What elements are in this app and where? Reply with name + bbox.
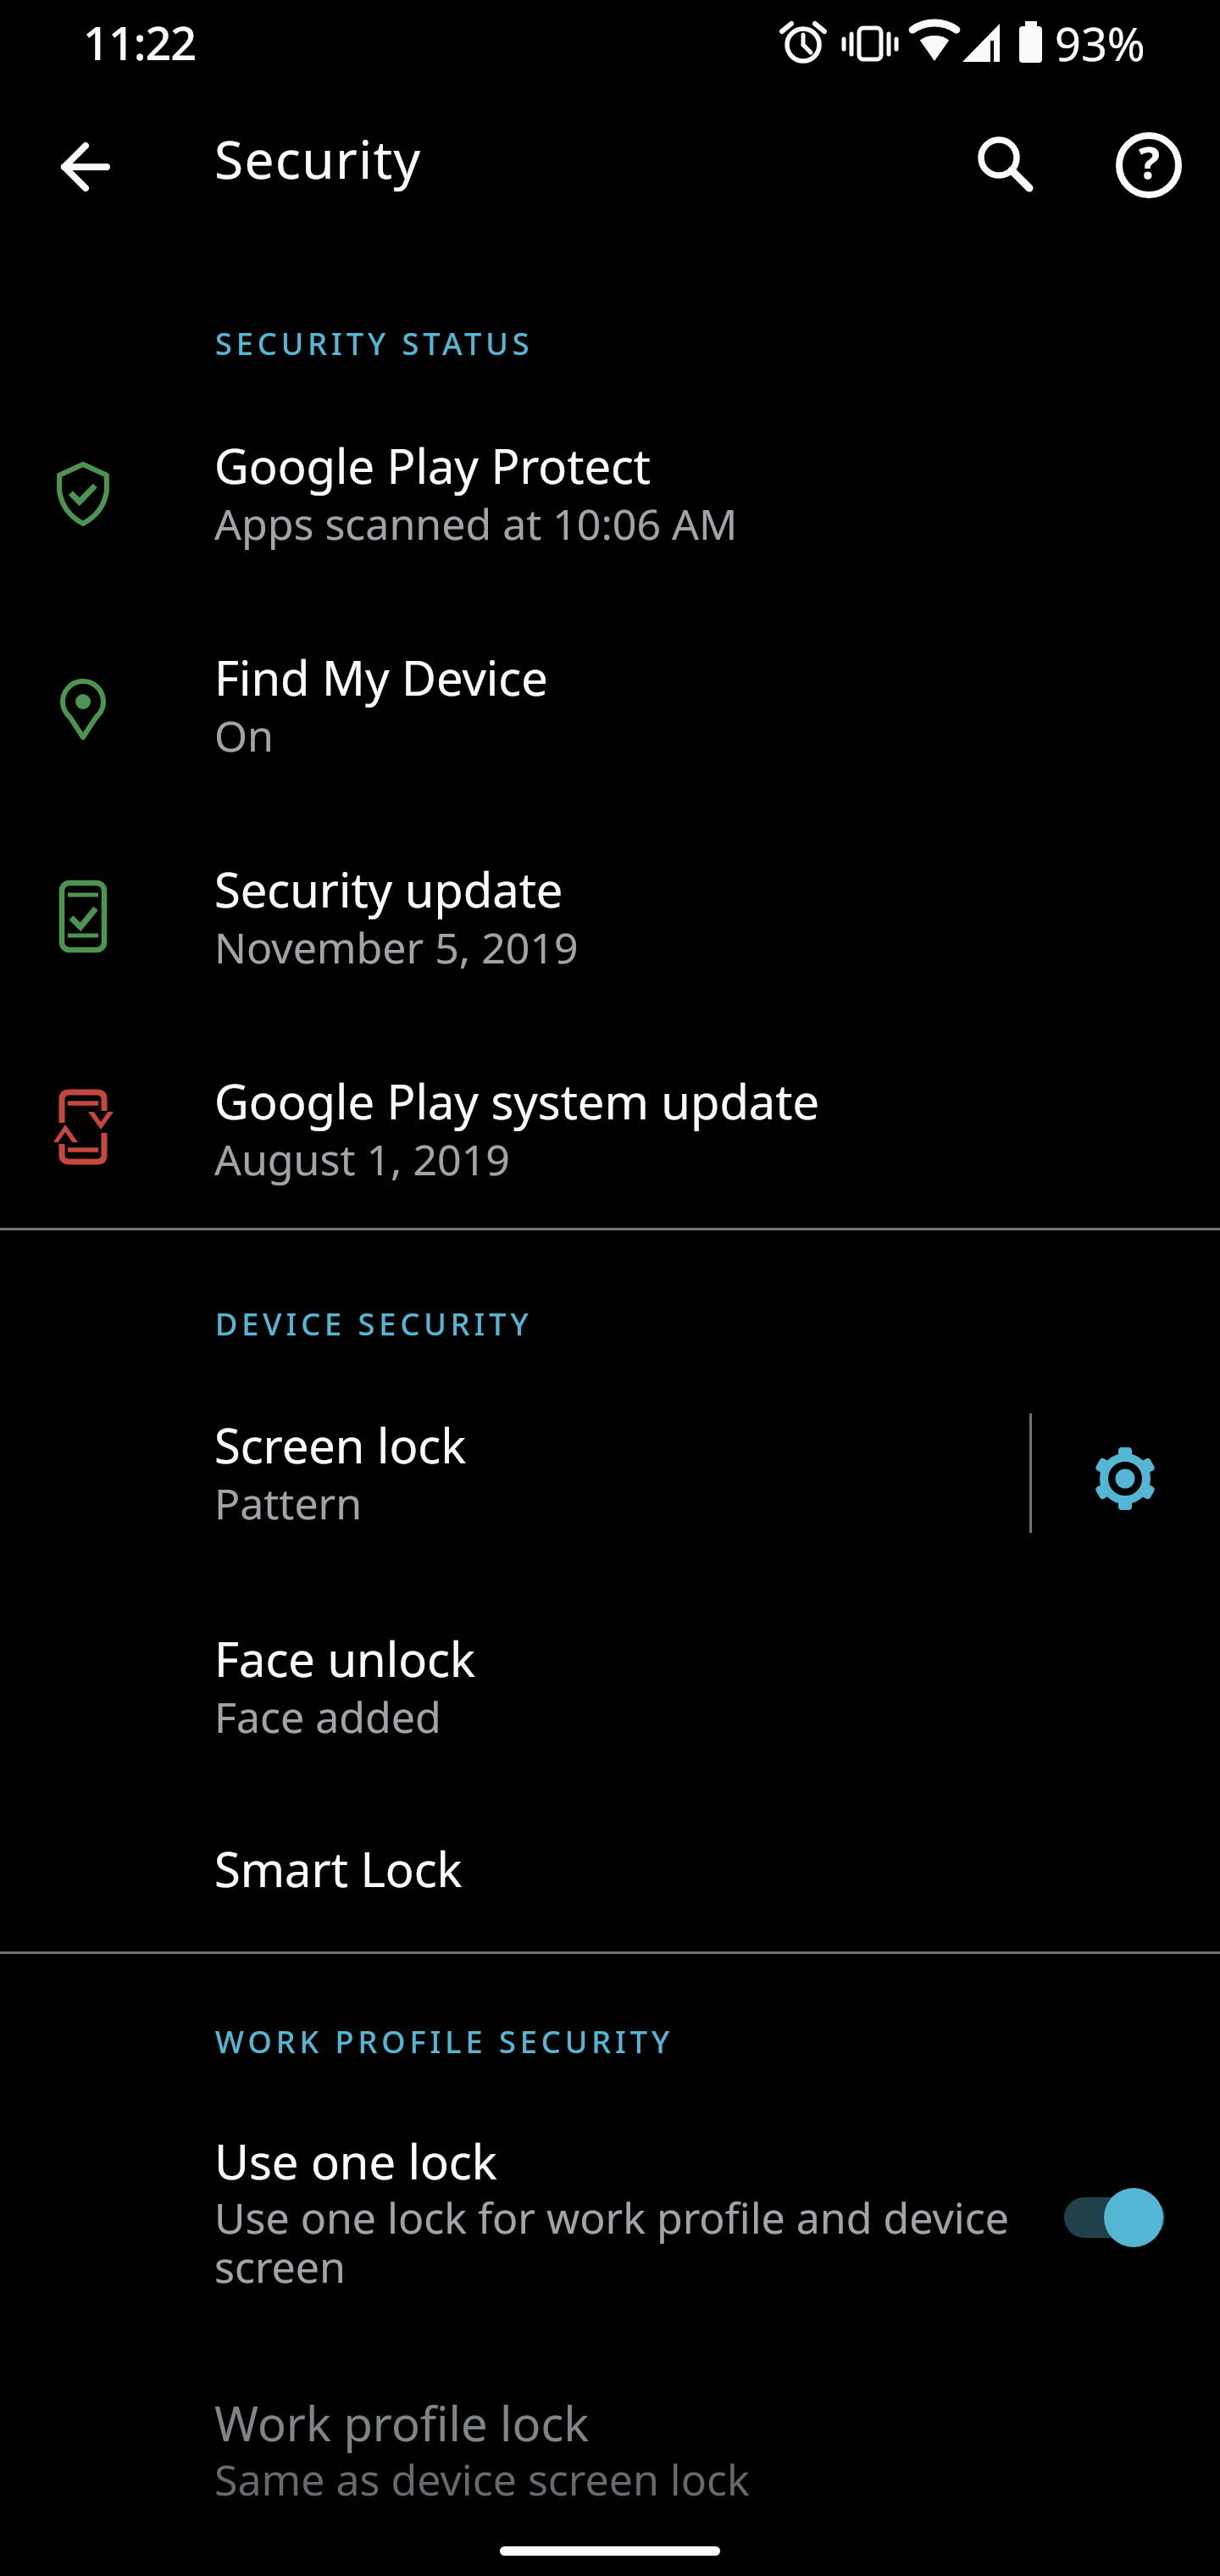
staticText: Google Play system update: [214, 1069, 820, 1133]
button[interactable]: Google Play system update: [0, 1024, 1220, 1236]
staticText: 93%: [1055, 12, 1145, 75]
staticText: Google Play Protect: [214, 433, 652, 497]
button[interactable]: Face unlock: [0, 1582, 1220, 1794]
button[interactable]: [1098, 114, 1200, 216]
staticText: ?: [1139, 131, 1160, 192]
staticText: November 5, 2019: [214, 919, 579, 976]
button[interactable]: [35, 116, 136, 218]
staticText: WORK PROFILE SECURITY: [215, 2021, 674, 2062]
staticText: Security: [214, 123, 422, 194]
staticText: Same as device screen lock: [214, 2451, 750, 2508]
staticText: Face unlock: [214, 1626, 475, 1690]
staticText: Find My Device: [214, 645, 548, 709]
button[interactable]: Security update: [0, 813, 1220, 1024]
staticText: Screen lock: [214, 1413, 467, 1477]
staticText: Security update: [214, 857, 563, 921]
button[interactable]: [1064, 1418, 1186, 1540]
staticText: 11:22: [83, 11, 197, 74]
staticText: Smart Lock: [214, 1836, 463, 1901]
staticText: screen: [214, 2238, 346, 2296]
staticText: August 1, 2019: [214, 1130, 510, 1188]
button[interactable]: Google Play Protect: [0, 389, 1220, 601]
button[interactable]: Find My Device: [0, 601, 1220, 813]
staticText: Apps scanned at 10:06 AM: [214, 495, 738, 552]
staticText: Use one lock: [214, 2129, 497, 2193]
button[interactable]: Use one lock: [0, 2085, 1220, 2346]
staticText: Use one lock for work profile and device: [214, 2189, 1009, 2246]
staticText: Pattern: [214, 1474, 363, 1532]
staticText: SECURITY STATUS: [215, 323, 534, 364]
button[interactable]: Smart Lock: [0, 1794, 1220, 1953]
staticText: Work profile lock: [214, 2390, 590, 2455]
button[interactable]: [948, 115, 1050, 217]
button[interactable]: Screen lock: [0, 1368, 1220, 1580]
staticText: DEVICE SECURITY: [215, 1303, 533, 1345]
staticText: Face added: [214, 1688, 441, 1746]
staticText: On: [214, 707, 274, 764]
